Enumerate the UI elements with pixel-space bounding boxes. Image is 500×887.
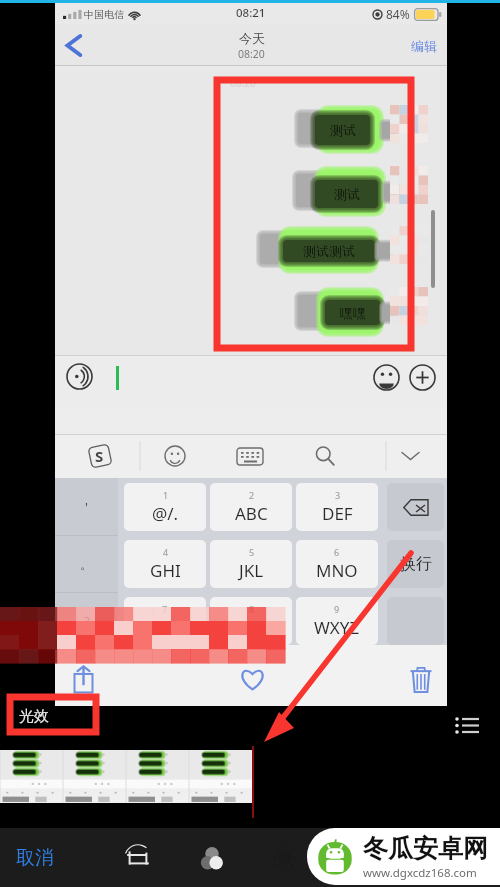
staticText: 测试	[330, 122, 356, 138]
button[interactable]: 7	[124, 597, 206, 645]
staticText: DEF	[322, 502, 353, 525]
button[interactable]: 6	[296, 540, 378, 588]
staticText: ABC	[235, 502, 268, 525]
staticText: 84%	[386, 6, 410, 22]
button[interactable]: 4	[124, 540, 206, 588]
staticText: 4	[163, 546, 169, 558]
button[interactable]: Back	[55, 25, 91, 66]
button[interactable]: 3	[296, 483, 378, 531]
button[interactable]: Add	[407, 362, 437, 392]
button[interactable]: Filters	[192, 838, 232, 878]
staticText: 3	[335, 489, 341, 501]
button[interactable]: 取消	[16, 846, 54, 870]
staticText: 9	[334, 603, 340, 615]
button[interactable]: Backspace	[387, 483, 444, 531]
staticText: TUV	[235, 616, 268, 639]
button[interactable]: Emoji	[371, 362, 401, 392]
staticText: 6	[334, 546, 340, 558]
button[interactable]: 光效	[17, 705, 51, 728]
staticText: 嘿嘿	[340, 305, 366, 321]
staticText: 7	[162, 603, 168, 615]
button[interactable]: Sogou input method	[80, 434, 120, 478]
button[interactable]: 换行	[387, 540, 444, 588]
staticText: www.dgxcdz168.com	[363, 865, 477, 881]
button[interactable]: Favorite	[237, 664, 267, 694]
staticText: WXYZ	[314, 616, 360, 639]
staticText: ?	[84, 612, 90, 630]
button[interactable]: 1	[124, 483, 206, 531]
staticText: 08:20	[238, 47, 265, 61]
staticText: @/.	[152, 502, 179, 525]
button[interactable]: '	[55, 478, 118, 535]
staticText: 取消	[16, 846, 54, 870]
staticText: 编辑	[411, 38, 437, 54]
button[interactable]: ?	[55, 592, 118, 649]
button[interactable]: List	[452, 710, 482, 740]
staticText: 测试	[334, 186, 360, 202]
staticText: 今天	[239, 30, 265, 46]
staticText: S	[95, 446, 104, 466]
staticText: '	[85, 498, 88, 516]
button[interactable]: Search	[305, 434, 345, 478]
staticText: PQRS	[143, 616, 187, 639]
staticText: 中国电信	[84, 8, 124, 21]
staticText: 冬瓜安卓网	[363, 833, 488, 864]
button[interactable]: 2	[210, 483, 292, 531]
button[interactable]: 编辑	[411, 38, 437, 54]
button[interactable]: Crop and rotate	[118, 838, 158, 878]
staticText: 1	[163, 489, 169, 501]
staticText: JKL	[239, 559, 264, 582]
staticText: MNO	[316, 559, 358, 582]
button[interactable]: 8	[210, 597, 292, 645]
button[interactable]: Delete	[406, 664, 436, 694]
staticText: 2	[249, 489, 255, 501]
button[interactable]: 5	[210, 540, 292, 588]
button[interactable]: Share	[68, 664, 98, 694]
button[interactable]: Voice	[65, 362, 93, 390]
staticText: 光效	[19, 707, 49, 726]
staticText: 8	[249, 603, 255, 615]
staticText: 。	[80, 556, 93, 572]
button[interactable]: Keyboard	[230, 434, 270, 478]
staticText: GHI	[150, 559, 181, 582]
staticText: 08:21	[236, 5, 266, 21]
button[interactable]: Emoji	[155, 434, 195, 478]
button[interactable]: 9	[296, 597, 378, 645]
staticText: 5	[249, 546, 255, 558]
staticText: 08:20	[230, 76, 256, 90]
staticText: 换行	[400, 554, 432, 574]
staticText: 测试测试	[303, 243, 355, 259]
button[interactable]: Hide keyboard	[390, 434, 430, 478]
